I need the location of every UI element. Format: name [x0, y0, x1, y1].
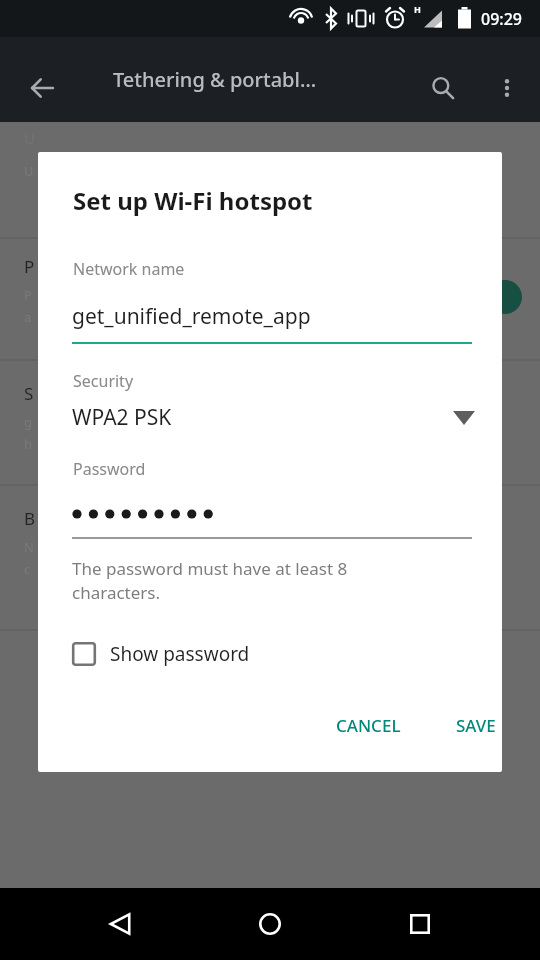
button[interactable]: Show password: [64, 630, 294, 678]
staticText: P: [24, 286, 32, 304]
staticText: S: [24, 382, 34, 405]
staticText: c: [24, 560, 31, 578]
staticText: SAVE: [456, 714, 496, 737]
staticText: h: [24, 435, 33, 453]
button[interactable]: More options: [479, 60, 535, 116]
staticText: Show password: [110, 641, 250, 667]
staticText: Password: [73, 458, 146, 480]
staticText: a: [24, 308, 32, 326]
staticText: Security: [73, 370, 134, 392]
staticText: g: [24, 413, 32, 431]
staticText: The password must have at least 8 charac…: [72, 557, 348, 604]
staticText: N: [24, 538, 34, 556]
staticText: Tethering & portabl…: [113, 66, 317, 93]
staticText: P: [24, 255, 35, 278]
staticText: B: [24, 507, 36, 530]
button[interactable]: Search: [415, 60, 471, 116]
button[interactable]: Navigate up: [14, 60, 70, 116]
button[interactable]: CANCEL: [311, 701, 425, 749]
staticText: U: [24, 162, 34, 180]
button[interactable]: WPA2 PSK: [38, 397, 502, 441]
button[interactable]: Home: [235, 900, 305, 948]
staticText: get_unified_remote_app: [72, 302, 311, 331]
button[interactable]: Recent apps: [385, 900, 455, 948]
button[interactable]: SAVE: [432, 701, 502, 749]
button[interactable]: Back: [85, 900, 155, 948]
staticText: Network name: [73, 258, 185, 280]
staticText: CANCEL: [336, 714, 401, 737]
staticText: Set up Wi-Fi hotspot: [73, 184, 313, 217]
staticText: WPA2 PSK: [72, 403, 172, 432]
staticText: 09:29: [481, 8, 522, 30]
staticText: H: [414, 3, 421, 15]
